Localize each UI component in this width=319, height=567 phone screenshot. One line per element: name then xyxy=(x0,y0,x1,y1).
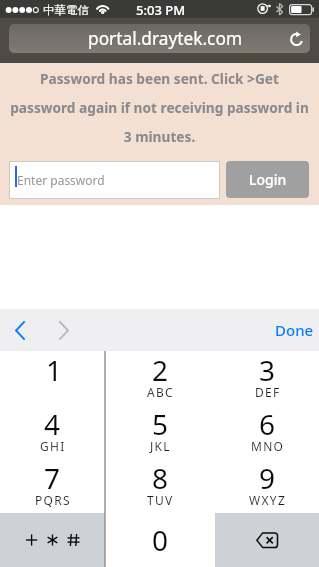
staticText: 4 xyxy=(44,405,61,443)
staticText: PQRS xyxy=(35,492,71,508)
button[interactable]: Done xyxy=(266,309,319,351)
staticText: WXYZ xyxy=(249,492,287,508)
staticText: ABC xyxy=(147,384,174,400)
button[interactable]: 9 xyxy=(216,459,319,513)
staticText: Done xyxy=(275,320,314,340)
staticText: DEF xyxy=(255,384,281,400)
staticText: 5 xyxy=(152,405,169,443)
staticText: Enter password xyxy=(17,172,105,188)
button[interactable]: 3 xyxy=(216,351,319,405)
button[interactable]: Enter password xyxy=(10,162,219,198)
button[interactable]: 1 xyxy=(0,351,105,405)
button[interactable]: Backspace xyxy=(215,513,319,567)
staticText: 5:03 PM xyxy=(136,1,186,19)
button[interactable]: 6 xyxy=(216,405,319,459)
staticText: 3 xyxy=(259,351,276,389)
button[interactable]: 5 xyxy=(105,405,216,459)
button[interactable]: Next field xyxy=(45,309,83,351)
staticText: Login xyxy=(249,170,287,189)
staticText: 8 xyxy=(152,459,169,497)
staticText: 7 xyxy=(44,459,61,497)
staticText: 中華電信 xyxy=(43,3,89,17)
staticText: MNO xyxy=(251,438,285,454)
staticText: 2 xyxy=(152,351,169,389)
staticText: 0 xyxy=(152,521,169,559)
button[interactable]: Reload xyxy=(285,27,309,51)
button[interactable]: Login xyxy=(226,161,309,198)
staticText: 1 xyxy=(46,351,63,389)
staticText: 9 xyxy=(259,459,276,497)
button[interactable]: 2 xyxy=(105,351,216,405)
button[interactable]: 8 xyxy=(105,459,216,513)
staticText: portal.draytek.com xyxy=(88,27,243,51)
staticText: Password has been sent. Click >Get passw… xyxy=(7,69,312,146)
staticText: 6 xyxy=(259,405,276,443)
staticText: GHI xyxy=(40,438,66,454)
button[interactable]: Previous field xyxy=(1,309,39,351)
button[interactable]: 0 xyxy=(105,513,216,567)
staticText: JKL xyxy=(150,438,171,454)
button[interactable]: portal.draytek.com xyxy=(9,24,310,53)
button[interactable]: 4 xyxy=(0,405,105,459)
staticText: TUV xyxy=(147,492,174,508)
button[interactable]: 7 xyxy=(0,459,105,513)
button[interactable]: Symbols xyxy=(0,513,105,567)
